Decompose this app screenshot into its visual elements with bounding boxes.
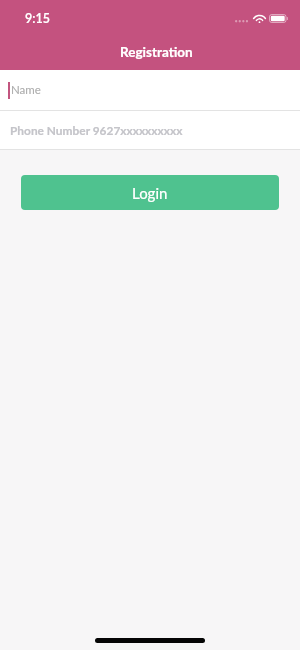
staticText: Login: [132, 184, 168, 202]
button[interactable]: Name input field: [0, 70, 300, 110]
staticText: Phone Number 9627xxxxxxxxxx: [10, 123, 183, 137]
staticText: 9:15: [25, 11, 50, 26]
button[interactable]: Phone Number input field: [0, 111, 300, 149]
staticText: Registration: [120, 44, 193, 60]
button[interactable]: Login: [21, 175, 279, 210]
staticText: Name: [11, 83, 41, 97]
